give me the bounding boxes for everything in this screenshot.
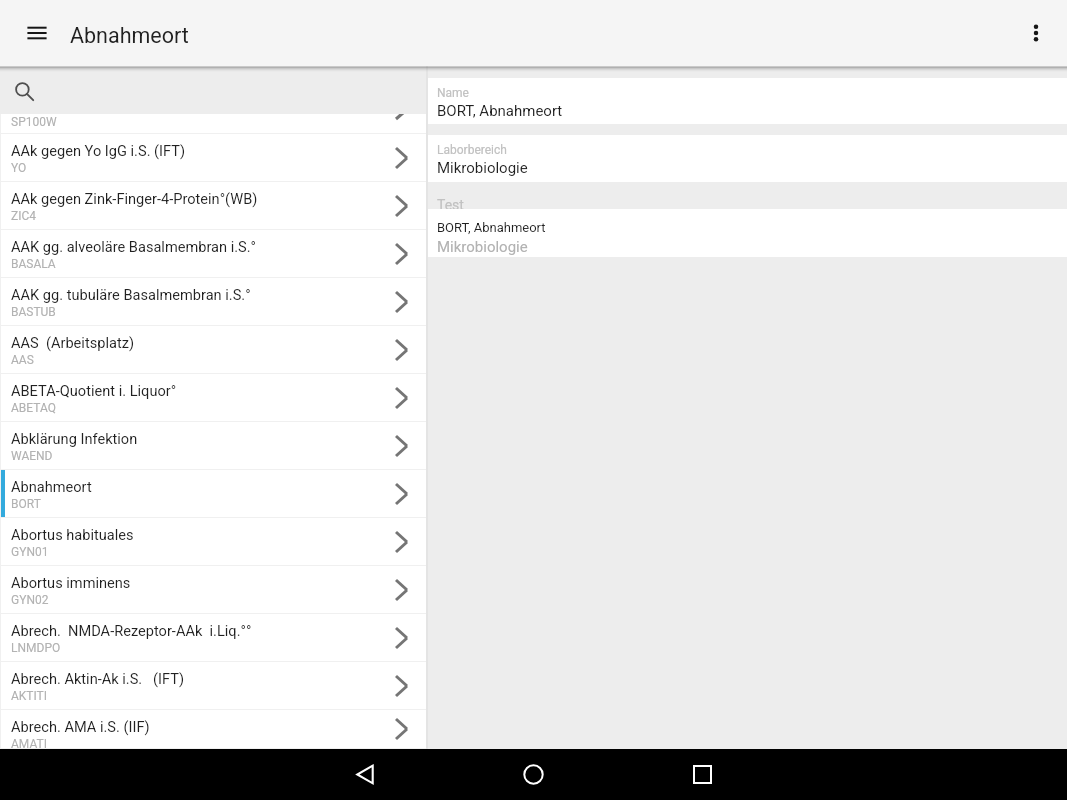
button[interactable]: AAS (Arbeitsplatz) — [0, 326, 426, 374]
button[interactable]: Abortus habituales — [0, 518, 426, 566]
staticText: AAS (Arbeitsplatz) — [11, 334, 134, 351]
button[interactable]: Abrech. AMA i.S. (IIF) — [0, 710, 426, 749]
button[interactable]: Menu — [13, 9, 61, 57]
staticText: AMATI — [11, 737, 47, 748]
staticText: ABETAQ — [11, 401, 56, 415]
staticText: GYN02 — [11, 593, 49, 607]
staticText: LNMDPO — [11, 641, 61, 655]
staticText: Abortus imminens — [11, 574, 131, 591]
button[interactable]: Abortus imminens — [0, 566, 426, 614]
staticText: AAk gegen Zink-Finger-4-Protein°(WB) — [11, 190, 258, 207]
staticText: BASALA — [11, 257, 56, 271]
button[interactable]: Abrech. NMDA-Rezeptor-AAk i.Liq.°° — [0, 614, 426, 662]
staticText: BORT, Abnahmeort — [437, 102, 563, 120]
button[interactable]: AAk gegen Yo IgG i.S. (IFT) — [0, 134, 426, 182]
staticText: Abrech. Aktin-Ak i.S. (IFT) — [11, 670, 185, 687]
staticText: Abnahmeort — [70, 23, 189, 48]
button[interactable]: Recent apps — [672, 749, 732, 800]
button[interactable]: Abnahmeort — [0, 470, 426, 518]
staticText: AKTITI — [11, 689, 48, 703]
button[interactable]: More options — [1012, 9, 1060, 57]
staticText: Laborbereich — [437, 143, 507, 157]
staticText: WAEND — [11, 449, 53, 463]
staticText: Name — [437, 86, 469, 100]
staticText: Test — [437, 197, 464, 213]
staticText: BORT — [11, 497, 41, 511]
staticText: Mikrobiologie — [437, 159, 528, 177]
button[interactable]: Back — [335, 749, 395, 800]
button[interactable]: Abrech. Aktin-Ak i.S. (IFT) — [0, 662, 426, 710]
staticText: SP100W — [11, 115, 57, 129]
button[interactable]: Search — [0, 66, 426, 114]
button[interactable]: ABETA-Quotient i. Liquor° — [0, 374, 426, 422]
staticText: ABETA-Quotient i. Liquor° — [11, 382, 177, 399]
staticText: Abnahmeort — [11, 478, 92, 495]
button[interactable]: AAK gg. tubuläre Basalmembran i.S.° — [0, 278, 426, 326]
staticText: YO — [11, 161, 27, 175]
staticText: Abklärung Infektion — [11, 430, 138, 447]
button[interactable]: Home — [503, 749, 563, 800]
staticText: ZIC4 — [11, 209, 37, 223]
staticText: AAS — [11, 353, 34, 367]
button[interactable]: Abklärung Infektion — [0, 422, 426, 470]
staticText: Abrech. AMA i.S. (IIF) — [11, 718, 150, 735]
staticText: AAk gegen Yo IgG i.S. (IFT) — [11, 142, 186, 159]
staticText: AAK gg. tubuläre Basalmembran i.S.° — [11, 286, 251, 303]
staticText: Abrech. NMDA-Rezeptor-AAk i.Liq.°° — [11, 622, 252, 639]
staticText: AAK gg. alveoläre Basalmembran i.S.° — [11, 238, 257, 255]
staticText: BASTUB — [11, 305, 56, 319]
staticText: BORT, Abnahmeort — [437, 220, 546, 235]
staticText: Abortus habituales — [11, 526, 134, 543]
button[interactable]: AAK gg. alveoläre Basalmembran i.S.° — [0, 230, 426, 278]
staticText: Mikrobiologie — [437, 238, 528, 256]
staticText: GYN01 — [11, 545, 49, 559]
button[interactable]: AAk gegen Zink-Finger-4-Protein°(WB) — [0, 182, 426, 230]
